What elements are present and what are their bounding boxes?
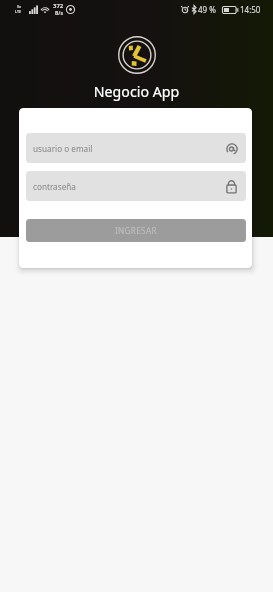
button[interactable]: INGRESAR: [26, 219, 246, 242]
staticText: B/s: [55, 10, 63, 17]
staticText: LTE: [15, 9, 22, 14]
button[interactable]: contraseña: [26, 171, 246, 201]
staticText: 372: [53, 2, 64, 10]
staticText: usuario o email: [33, 143, 93, 154]
staticText: INGRESAR: [115, 225, 157, 236]
staticText: 49 %: [198, 4, 216, 15]
button[interactable]: usuario o email: [26, 133, 246, 163]
staticText: contraseña: [33, 181, 76, 192]
staticText: Negocio App: [0, 82, 273, 101]
staticText: 14:50: [240, 4, 261, 15]
other: Email: [226, 143, 238, 155]
staticText: Vo: [17, 5, 21, 9]
other: Password: [225, 180, 238, 194]
